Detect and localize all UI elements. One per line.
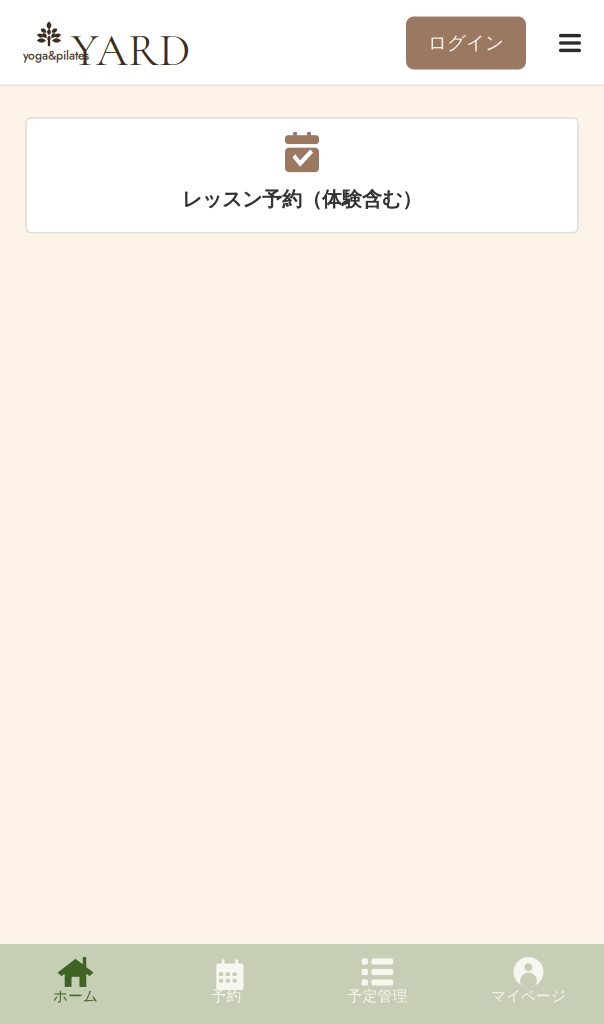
button[interactable]: マイページ xyxy=(453,944,604,1024)
button[interactable]: YARD home xyxy=(0,17,185,69)
button[interactable]: 予約 xyxy=(151,944,302,1024)
staticText: ホーム xyxy=(53,987,98,1005)
staticText: 予定管理 xyxy=(347,987,407,1005)
staticText: YARD xyxy=(71,23,190,78)
button[interactable]: Menu xyxy=(547,17,593,69)
staticText: 予約 xyxy=(211,987,241,1005)
staticText: ログイン xyxy=(428,31,504,54)
staticText: レッスン予約（体験含む） xyxy=(182,187,422,212)
staticText: マイページ xyxy=(491,987,566,1005)
staticText: yoga&pilates xyxy=(23,47,89,64)
button[interactable]: 予定管理 xyxy=(302,944,453,1024)
button[interactable]: ログイン xyxy=(406,16,526,69)
button[interactable]: レッスン予約（体験含む） xyxy=(26,118,578,233)
button[interactable]: ホーム xyxy=(0,944,151,1024)
